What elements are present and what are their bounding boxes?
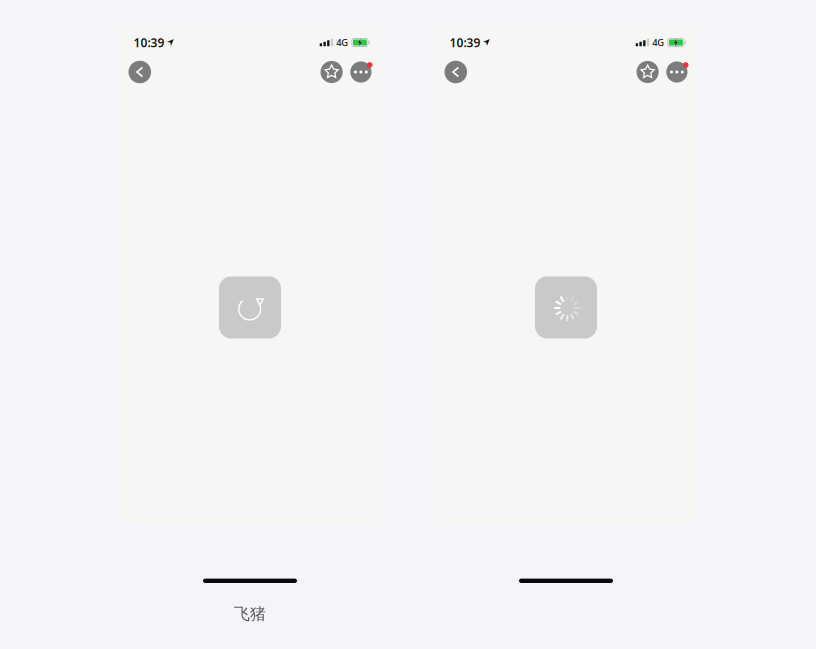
staticText: 10:39 xyxy=(133,34,164,50)
button[interactable]: More xyxy=(350,61,371,83)
staticText: 4G xyxy=(652,36,664,49)
staticText: 飞猪 xyxy=(234,604,266,624)
button[interactable]: Back xyxy=(444,61,467,83)
staticText: 4G xyxy=(336,36,348,49)
staticText: 10:39 xyxy=(449,34,480,50)
button[interactable]: Favorite xyxy=(636,61,659,83)
button[interactable]: Favorite xyxy=(320,61,343,83)
button[interactable]: Back xyxy=(128,61,151,83)
button[interactable]: More xyxy=(666,61,687,83)
